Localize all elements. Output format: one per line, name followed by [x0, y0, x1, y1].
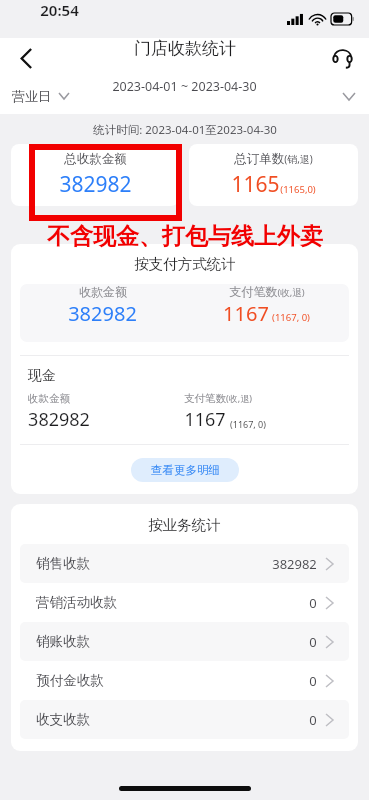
button[interactable]: Expand date range — [343, 93, 355, 100]
button[interactable]: 销账收款 — [20, 622, 349, 661]
staticText: 总订单数(销,退) — [234, 151, 313, 167]
button[interactable]: 销售收款 — [20, 544, 349, 583]
staticText: 现金 — [28, 367, 56, 385]
staticText: 总收款金额 — [64, 151, 127, 167]
staticText: 0 — [309, 711, 317, 729]
staticText: 销售收款 — [36, 555, 90, 572]
staticText: 支付笔数(收,退) — [184, 392, 252, 405]
button[interactable]: 营销活动收款 — [20, 583, 349, 622]
staticText: 收款金额 — [28, 392, 70, 405]
staticText: 382982 — [272, 555, 317, 573]
staticText: 收支收款 — [36, 711, 90, 728]
button[interactable]: 查看更多明细 — [131, 458, 239, 482]
staticText: 按支付方式统计 — [134, 255, 236, 273]
button[interactable]: 营业日 — [12, 88, 69, 104]
button[interactable]: Customer service — [323, 39, 361, 77]
staticText: 1167 — [184, 407, 226, 432]
button[interactable]: 总收款金额 — [11, 144, 179, 206]
staticText: 382982 — [68, 300, 137, 327]
staticText: 2023-04-01 ~ 2023-04-30 — [112, 78, 257, 95]
staticText: 382982 — [28, 407, 90, 432]
button[interactable]: 预付金收款 — [20, 661, 349, 700]
staticText: 0 — [309, 633, 317, 651]
staticText: 0 — [309, 672, 317, 690]
staticText: 销账收款 — [36, 633, 90, 650]
staticText: (1167, 0) — [230, 418, 266, 430]
staticText: 支付笔数(收,退) — [229, 284, 305, 299]
staticText: 收款金额 — [79, 284, 127, 299]
staticText: 不含现金、打包与线上外卖 — [47, 222, 323, 251]
staticText: 营业日 — [12, 88, 51, 104]
staticText: 20:54 — [40, 0, 79, 20]
button[interactable]: Back — [6, 38, 46, 78]
staticText: (1167, 0) — [272, 311, 310, 324]
staticText: 按业务统计 — [148, 516, 221, 534]
staticText: 预付金收款 — [36, 672, 104, 689]
staticText: 0 — [309, 594, 317, 612]
staticText: 1165 — [231, 170, 280, 199]
staticText: 382982 — [59, 170, 132, 199]
staticText: (1165,0) — [280, 183, 316, 196]
staticText: 1167 — [223, 300, 269, 327]
staticText: 营销活动收款 — [36, 594, 117, 611]
button[interactable]: 总订单数(销,退) — [189, 144, 358, 206]
button[interactable]: 收支收款 — [20, 700, 349, 739]
staticText: 查看更多明细 — [151, 463, 220, 477]
staticText: 门店收款统计 — [134, 38, 236, 59]
staticText: 统计时间: 2023-04-01至2023-04-30 — [93, 122, 277, 138]
